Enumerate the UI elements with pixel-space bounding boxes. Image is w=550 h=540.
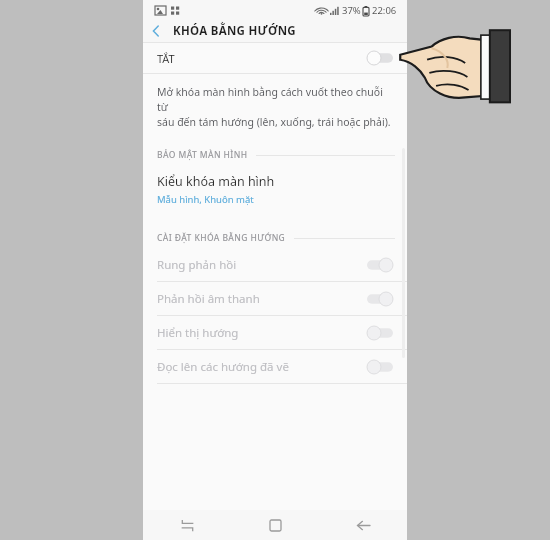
button[interactable]: Rung phản hồi <box>143 248 407 281</box>
staticText: Phản hồi âm thanh <box>157 291 260 307</box>
staticText: Đọc lên các hướng đã vẽ <box>157 359 289 375</box>
staticText: BẢO MẬT MÀN HÌNH <box>157 149 248 161</box>
button[interactable]: TẮT <box>143 43 407 73</box>
button[interactable]: Back <box>319 510 407 540</box>
staticText: 37% <box>342 4 361 17</box>
staticText: Hiển thị hướng <box>157 325 239 341</box>
staticText: Mẫu hình, Khuôn mặt <box>157 193 254 206</box>
button[interactable]: Home <box>231 510 319 540</box>
button[interactable]: Kiểu khóa màn hình <box>143 165 407 212</box>
button[interactable]: Back <box>143 20 169 42</box>
staticText: CÀI ĐẶT KHÓA BẰNG HƯỚNG <box>157 232 286 244</box>
staticText: KHÓA BẰNG HƯỚNG <box>173 23 296 39</box>
staticText: Mở khóa màn hình bằng cách vuốt theo chu… <box>157 85 391 129</box>
button[interactable]: Phản hồi âm thanh <box>143 282 407 315</box>
button[interactable]: Hiển thị hướng <box>143 316 407 349</box>
staticText: Kiểu khóa màn hình <box>157 173 275 190</box>
staticText: 22:06 <box>372 4 397 17</box>
staticText: Rung phản hồi <box>157 257 237 273</box>
button[interactable]: Đọc lên các hướng đã vẽ <box>143 350 407 383</box>
button[interactable]: Recents <box>143 510 231 540</box>
staticText: TẮT <box>157 51 175 66</box>
